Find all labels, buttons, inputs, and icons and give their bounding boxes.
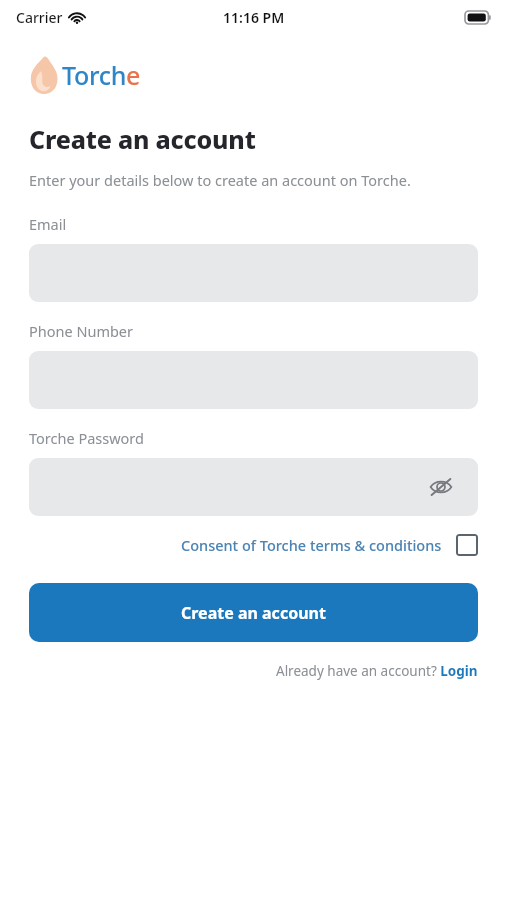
staticText: Consent of Torche terms & conditions [181,535,442,555]
other: Consent checkbox [456,534,478,556]
button[interactable]: Show password [29,458,478,516]
staticText: Phone Number [29,321,134,341]
staticText: Already have an account? Login [276,662,478,680]
button[interactable]: Create an account [29,583,478,642]
button[interactable]: Consent of Torche terms & conditions [29,534,478,556]
staticText: Torche Password [29,428,144,448]
staticText: Email [29,214,67,234]
button[interactable]: Already have an account? Login [276,662,478,680]
staticText: Enter your details below to create an ac… [29,170,411,190]
staticText: Carrier [16,8,63,27]
staticText: Torche [62,58,141,92]
button[interactable]: Show password [426,472,456,502]
staticText: Create an account [181,602,326,624]
staticText: Create an account [29,122,256,156]
staticText: 11:16 PM [223,8,285,27]
